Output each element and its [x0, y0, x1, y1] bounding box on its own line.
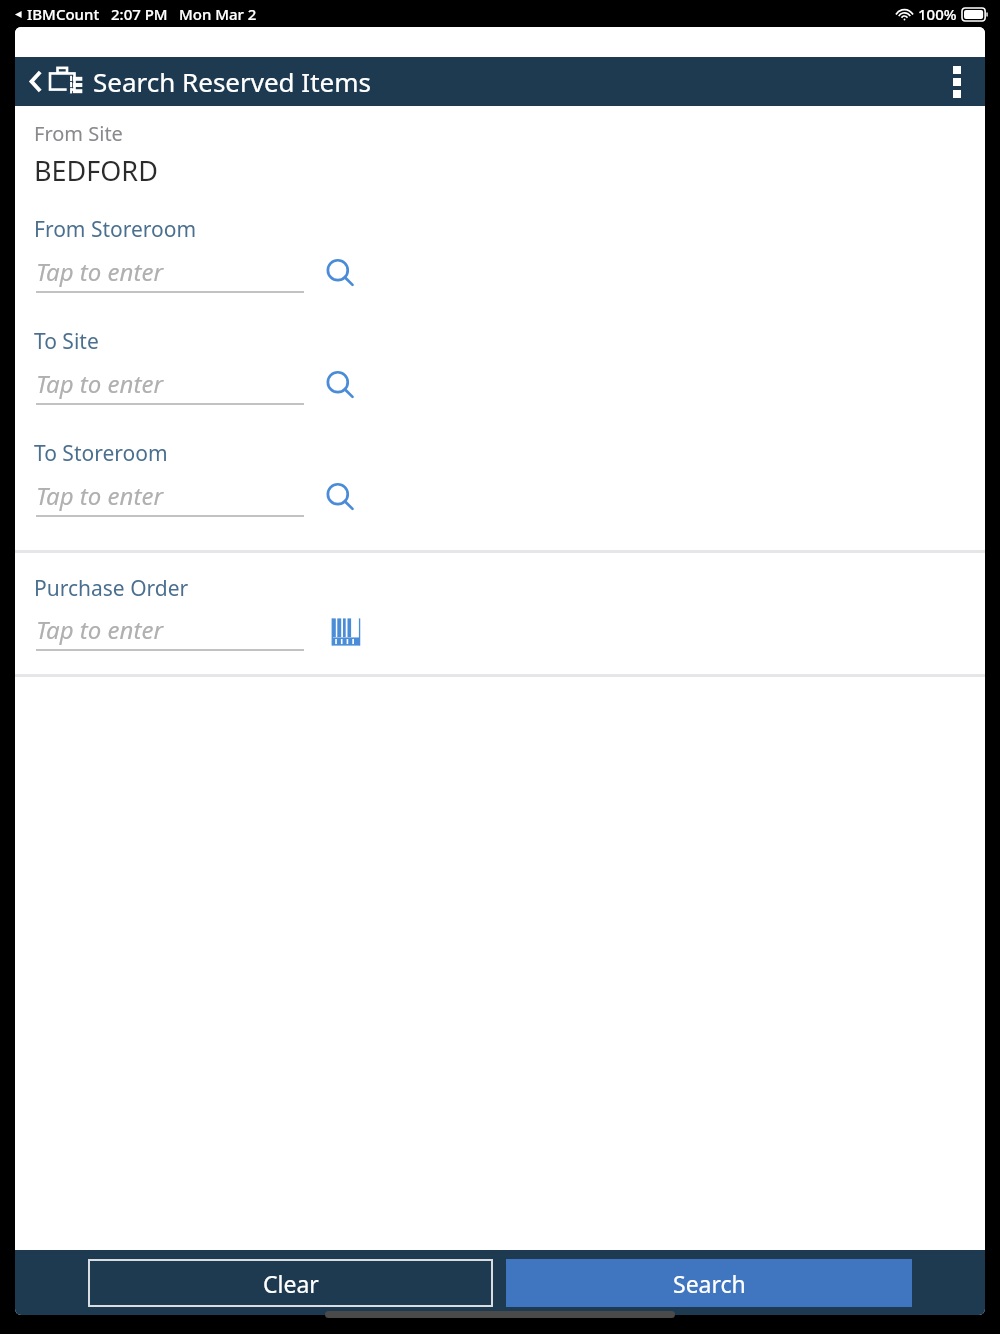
button[interactable]: Search From Storeroom [320, 253, 362, 295]
staticText: Tap to enter [36, 367, 163, 400]
button[interactable]: To Storeroom [15, 439, 985, 519]
staticText: Mon Mar 2 [179, 4, 257, 24]
button[interactable]: Scan barcode [326, 612, 366, 652]
staticText: Tap to enter [36, 479, 163, 512]
staticText: Search [673, 1268, 746, 1299]
staticText: Tap to enter [36, 613, 163, 646]
staticText: 2:07 PM [111, 4, 168, 24]
button[interactable]: Clear [88, 1259, 493, 1307]
button[interactable]: Search [506, 1259, 912, 1307]
staticText: 100% [918, 4, 957, 24]
staticText: From Storeroom [34, 215, 197, 244]
button[interactable]: More options [929, 57, 985, 106]
staticText: IBMCount [27, 4, 100, 24]
button[interactable]: Search To Storeroom [320, 477, 362, 519]
button[interactable]: Search To Site [320, 365, 362, 407]
staticText: From Site [34, 120, 123, 147]
button[interactable]: To Site [15, 327, 985, 407]
staticText: Purchase Order [34, 574, 189, 603]
staticText: BEDFORD [34, 152, 158, 189]
staticText: To Site [34, 327, 99, 356]
button[interactable]: From Storeroom [15, 215, 985, 295]
staticText: To Storeroom [34, 439, 168, 468]
button[interactable]: Purchase Order [15, 574, 985, 652]
staticText: Tap to enter [36, 255, 163, 288]
staticText: Clear [263, 1268, 319, 1299]
button[interactable]: Back to Reserved Items [29, 64, 371, 99]
staticText: Search Reserved Items [93, 64, 371, 99]
